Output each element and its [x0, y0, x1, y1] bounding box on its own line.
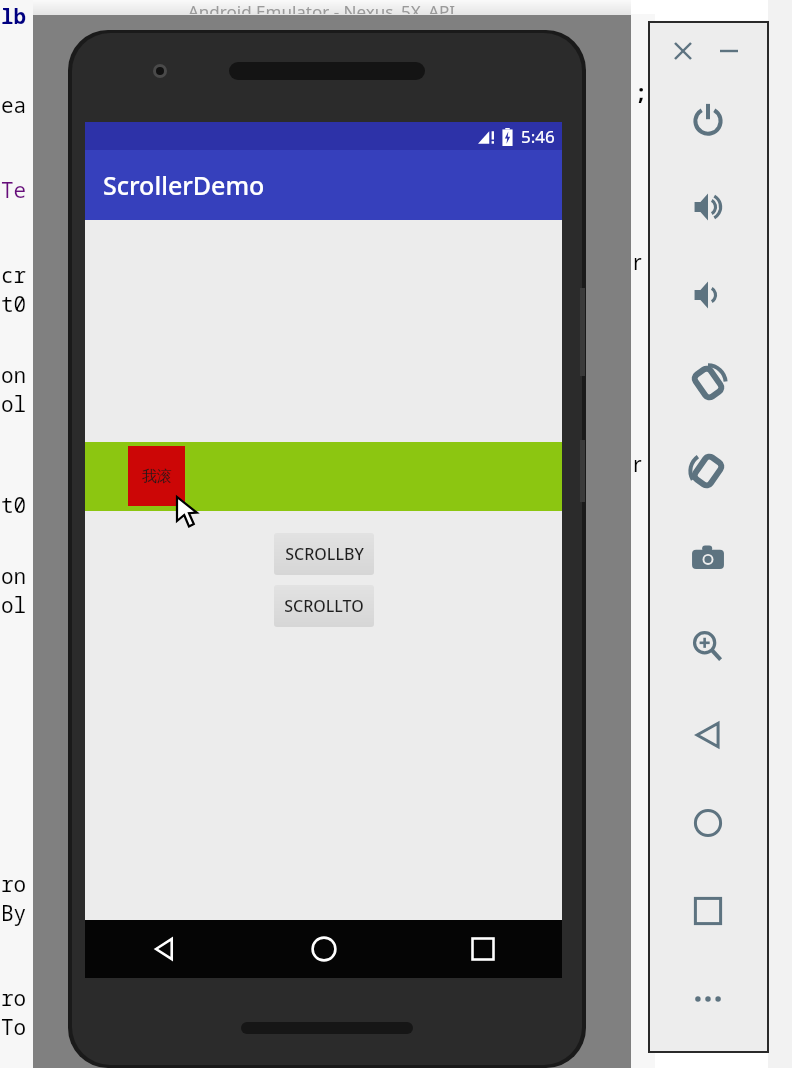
button[interactable]: Rotate left — [679, 354, 737, 412]
staticText: SCROLLBY — [285, 543, 364, 565]
staticText: r — [633, 248, 642, 277]
button[interactable]: SCROLLBY — [274, 533, 374, 575]
staticText: t0 — [1, 290, 27, 319]
button[interactable]: Home — [244, 920, 403, 978]
button[interactable]: Volume up — [679, 178, 737, 236]
staticText: Te — [1, 176, 27, 205]
staticText: ea — [1, 91, 27, 120]
staticText: ol — [1, 591, 27, 620]
staticText: on — [1, 562, 27, 591]
staticText: ScrollerDemo — [103, 168, 265, 202]
staticText: ol — [1, 390, 27, 419]
button[interactable]: Close — [668, 36, 698, 66]
button[interactable]: Volume down — [679, 266, 737, 324]
staticText: ; — [638, 76, 645, 106]
staticText: 5:46 — [521, 125, 555, 148]
button[interactable]: SCROLLTO — [274, 585, 374, 627]
staticText: cr — [1, 261, 27, 290]
button[interactable]: Minimize — [714, 36, 744, 66]
button[interactable]: Zoom — [679, 618, 737, 676]
staticText: 我滚 — [142, 467, 172, 486]
staticText: on — [1, 361, 27, 390]
button[interactable]: Screenshot — [679, 530, 737, 588]
button[interactable]: 我滚 — [128, 446, 185, 506]
button[interactable]: Overview — [679, 882, 737, 940]
button[interactable]: Back — [85, 920, 244, 978]
staticText: lb — [1, 2, 27, 31]
button[interactable]: Home — [679, 794, 737, 852]
staticText: t0 — [1, 491, 27, 520]
staticText: By — [1, 899, 27, 928]
button[interactable]: Rotate right — [679, 442, 737, 500]
button[interactable]: Power — [679, 90, 737, 148]
staticText: To — [1, 1013, 27, 1042]
staticText: ro — [1, 984, 27, 1013]
staticText: r — [633, 450, 642, 479]
button[interactable]: Recent apps — [403, 920, 562, 978]
staticText: ro — [1, 870, 27, 899]
staticText: SCROLLTO — [284, 595, 364, 617]
staticText: Android Emulator - Nexus_5X_API_... — [188, 0, 477, 14]
button[interactable]: Back — [679, 706, 737, 764]
button[interactable]: More — [679, 970, 737, 1028]
